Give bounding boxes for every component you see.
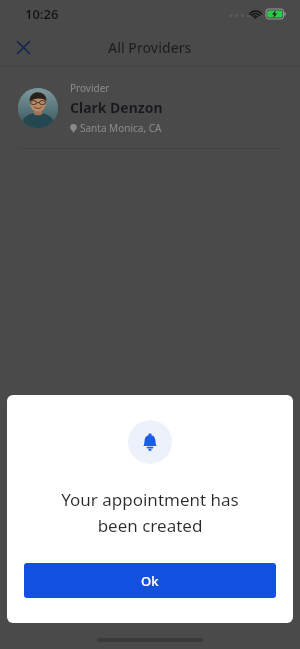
staticText: 10:26 [25, 5, 59, 23]
button[interactable]: Ok [24, 563, 276, 598]
button[interactable]: Provider [0, 67, 300, 148]
staticText: Provider [70, 81, 110, 95]
staticText: Your appointment has been created [61, 488, 239, 537]
staticText: All Providers [108, 38, 192, 57]
button[interactable]: Close [8, 32, 38, 62]
staticText: Ok [141, 572, 159, 590]
staticText: Clark Denzon [70, 98, 163, 117]
staticText: Santa Monica, CA [80, 121, 162, 135]
